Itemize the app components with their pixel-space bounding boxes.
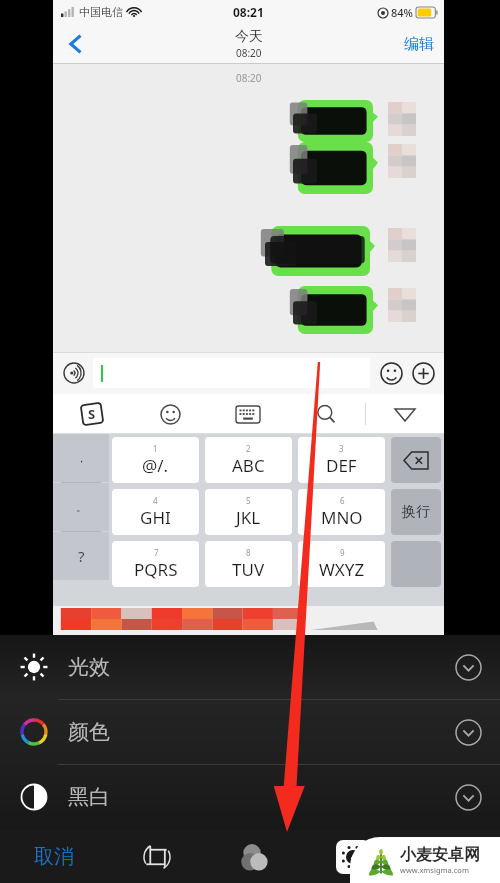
staticText: ， xyxy=(76,451,87,465)
button[interactable]: 黑白 xyxy=(0,765,500,829)
staticText: 5 xyxy=(246,495,251,506)
button[interactable]: 1 xyxy=(112,437,199,483)
staticText: 2 xyxy=(246,443,251,454)
button[interactable]: Search xyxy=(287,394,365,434)
staticText: 今天 xyxy=(235,28,263,46)
button[interactable]: ， xyxy=(53,434,109,482)
staticText: GHI xyxy=(140,506,171,529)
button[interactable]: 光效 xyxy=(0,635,500,699)
staticText: DEF xyxy=(326,454,357,477)
staticText: PQRS xyxy=(134,558,178,581)
staticText: TUV xyxy=(232,558,265,581)
staticText: 84% xyxy=(391,5,413,20)
button[interactable]: 7 xyxy=(112,541,199,587)
button[interactable]: 2 xyxy=(205,437,292,483)
staticText: 4 xyxy=(153,495,158,506)
button[interactable]: More xyxy=(408,358,438,388)
staticText: 6 xyxy=(340,495,345,506)
staticText: 7 xyxy=(154,547,159,558)
staticText: 黑白 xyxy=(68,784,110,810)
button[interactable]: Filters xyxy=(206,830,304,883)
button[interactable]: More options xyxy=(402,830,500,883)
button[interactable]: Sogou input xyxy=(53,394,131,434)
staticText: 8 xyxy=(246,547,251,558)
staticText: 中国电信 xyxy=(79,5,123,19)
staticText: 光效 xyxy=(68,654,110,680)
button[interactable]: 4 xyxy=(112,489,199,535)
button[interactable]: Keyboard xyxy=(209,394,287,434)
button[interactable]: Crop and rotate xyxy=(108,830,206,883)
button[interactable]: 取消 xyxy=(0,830,108,883)
staticText: 1 xyxy=(153,443,158,454)
staticText: 。 xyxy=(76,500,87,514)
staticText: @/. xyxy=(142,454,169,477)
button[interactable]: 编辑 xyxy=(404,35,434,54)
staticText: 08:20 xyxy=(236,71,262,85)
button[interactable]: Backspace xyxy=(391,437,441,483)
button[interactable]: 颜色 xyxy=(0,700,500,764)
button[interactable]: Back xyxy=(57,25,95,63)
staticText: 08:21 xyxy=(233,4,264,20)
staticText: 换行 xyxy=(402,503,430,521)
button[interactable]: 9 xyxy=(298,541,385,587)
staticText: JKL xyxy=(236,506,261,529)
button[interactable]: 3 xyxy=(298,437,385,483)
staticText: 取消 xyxy=(34,844,74,869)
staticText: WXYZ xyxy=(319,558,365,581)
button[interactable]: Hide keyboard xyxy=(366,394,444,434)
button[interactable]: Emoji xyxy=(376,358,406,388)
button[interactable]: Voice input xyxy=(59,358,89,388)
staticText: MNO xyxy=(321,506,363,529)
staticText: S xyxy=(88,405,96,423)
button[interactable]: 8 xyxy=(205,541,292,587)
button[interactable]: 换行 xyxy=(391,489,441,535)
button[interactable]: Adjust xyxy=(304,830,402,883)
staticText: 颜色 xyxy=(68,719,110,745)
button[interactable]: ? xyxy=(53,532,109,580)
staticText: 编辑 xyxy=(404,35,434,54)
staticText: 3 xyxy=(339,443,344,454)
staticText: ABC xyxy=(232,454,265,477)
staticText: 小麦安卓网 xyxy=(400,845,480,865)
button[interactable]: Emoji panel xyxy=(131,394,209,434)
button[interactable] xyxy=(93,358,370,388)
button[interactable]: 6 xyxy=(298,489,385,535)
staticText: 9 xyxy=(340,547,345,558)
button[interactable]: 5 xyxy=(205,489,292,535)
staticText: ? xyxy=(78,546,85,566)
staticText: 08:20 xyxy=(236,46,262,60)
staticText: www.xmsigma.com xyxy=(400,865,469,875)
